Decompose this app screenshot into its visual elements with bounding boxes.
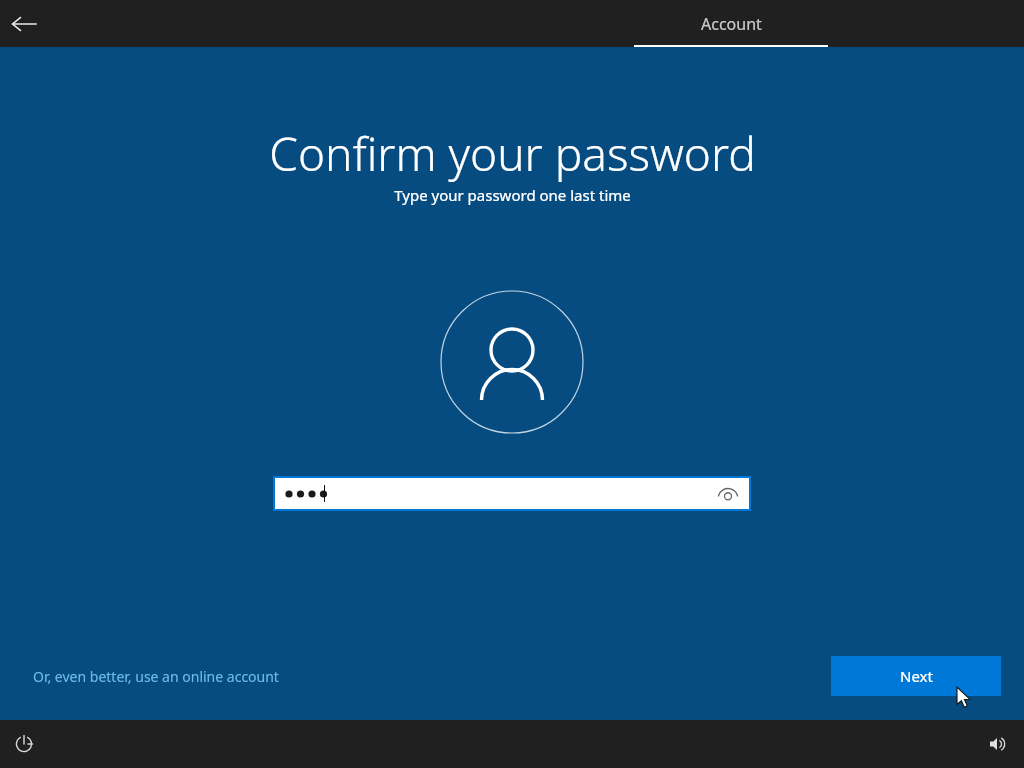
button[interactable]: Next xyxy=(831,656,1001,696)
button[interactable]: Show password xyxy=(275,478,749,509)
button[interactable]: Or, even better, use an online account xyxy=(20,662,292,691)
staticText: Type your password one last time xyxy=(394,185,631,205)
button[interactable]: Back xyxy=(0,0,48,47)
button[interactable]: Show password xyxy=(715,481,741,507)
staticText: Next xyxy=(900,666,933,686)
button[interactable]: Account xyxy=(634,0,828,47)
button[interactable]: Volume xyxy=(980,726,1016,762)
button[interactable]: Ease of access xyxy=(6,726,42,762)
staticText: Or, even better, use an online account xyxy=(33,667,279,686)
staticText: Confirm your password xyxy=(269,122,756,185)
staticText: Account xyxy=(701,13,762,35)
